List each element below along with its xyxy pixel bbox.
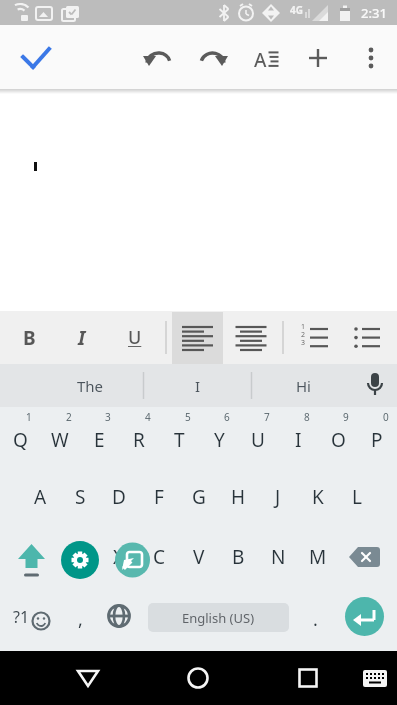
staticText: O [331,427,346,453]
button[interactable]: D [99,467,139,527]
staticText: 1 [301,322,306,332]
staticText: G [192,484,206,510]
staticText: The [77,376,104,396]
button[interactable]: F [139,467,179,527]
button[interactable]: K [298,467,338,527]
button[interactable]: S [60,467,100,527]
button[interactable]: Y [199,407,239,467]
button[interactable]: A [20,467,60,527]
button[interactable] [168,651,228,705]
staticText: V [193,544,205,570]
staticText: 4G [290,3,303,17]
button[interactable]: C [139,527,179,587]
staticText: K [312,484,324,510]
staticText: A [254,47,267,73]
button[interactable]: H [218,467,258,527]
staticText: , [78,607,83,632]
staticText: 2:31 [361,4,387,22]
button[interactable]: Z [60,527,100,587]
button[interactable]: Q [0,407,40,467]
staticText: I [295,427,302,453]
button[interactable]: N [258,527,298,587]
staticText: L [352,484,362,510]
staticText: 0 [383,410,389,424]
button[interactable]: M [298,527,338,587]
button[interactable] [352,651,397,705]
staticText: Q [13,427,28,453]
staticText: M [309,544,327,570]
staticText: 2 [66,410,72,424]
button[interactable]: X [99,527,139,587]
button[interactable] [338,527,397,587]
staticText: D [112,484,126,510]
button[interactable]: I [278,407,318,467]
button[interactable]: . [295,587,335,651]
button[interactable]: T [159,407,199,467]
button[interactable]: B [8,317,50,358]
staticText: Z [75,544,86,570]
staticText: ?1 [13,606,30,628]
staticText: I [195,376,201,396]
staticText: I [78,325,86,351]
button[interactable]: U [238,407,278,467]
staticText: J [275,484,281,510]
staticText: 8 [304,410,310,424]
staticText: X [113,544,125,570]
staticText: U [251,427,265,453]
button[interactable]: B [218,527,258,587]
staticText: C [153,544,166,570]
button[interactable] [278,651,338,705]
button[interactable]: W [40,407,80,467]
staticText: W [51,427,69,453]
button[interactable] [172,312,223,364]
button[interactable]: L [337,467,377,527]
staticText: Y [214,427,225,453]
staticText: P [371,427,383,453]
staticText: . [313,607,318,632]
staticText: 4 [145,410,151,424]
button[interactable]: The [40,364,140,407]
button[interactable]: O [318,407,358,467]
button[interactable]: U [114,317,156,358]
button[interactable] [0,527,59,587]
staticText: H [231,484,246,510]
button[interactable]: Hi [258,364,348,407]
staticText: T [174,427,185,453]
staticText: F [154,484,164,510]
button[interactable]: P [357,407,397,467]
button[interactable] [355,364,397,407]
staticText: English (US) [182,609,255,627]
button[interactable] [0,587,59,651]
button[interactable]: E [79,407,119,467]
button[interactable]: J [258,467,298,527]
button[interactable]: I [150,364,245,407]
button[interactable]: V [179,527,219,587]
staticText: R [133,427,145,453]
staticText: 6 [224,410,230,424]
staticText: 7 [264,410,270,424]
staticText: B [23,325,36,351]
staticText: E [94,427,105,453]
button[interactable]: R [119,407,159,467]
staticText: 3 [301,338,306,348]
staticText: 9 [343,410,349,424]
staticText: B [232,544,245,570]
staticText: N [271,544,286,570]
staticText: 3 [105,410,111,424]
staticText: 2 [301,330,306,340]
staticText: 1 [26,410,32,424]
staticText: Hi [296,376,311,396]
staticText: S [75,484,86,510]
staticText: U [128,325,142,350]
staticText: 5 [185,410,191,424]
button[interactable]: G [179,467,219,527]
button[interactable]: I [61,317,103,358]
button[interactable] [340,589,390,644]
button[interactable] [58,651,118,705]
staticText: A [34,484,47,510]
button[interactable] [15,63,57,103]
button[interactable] [100,587,140,651]
button[interactable]: English (US) [148,603,289,632]
button[interactable]: , [60,587,100,651]
